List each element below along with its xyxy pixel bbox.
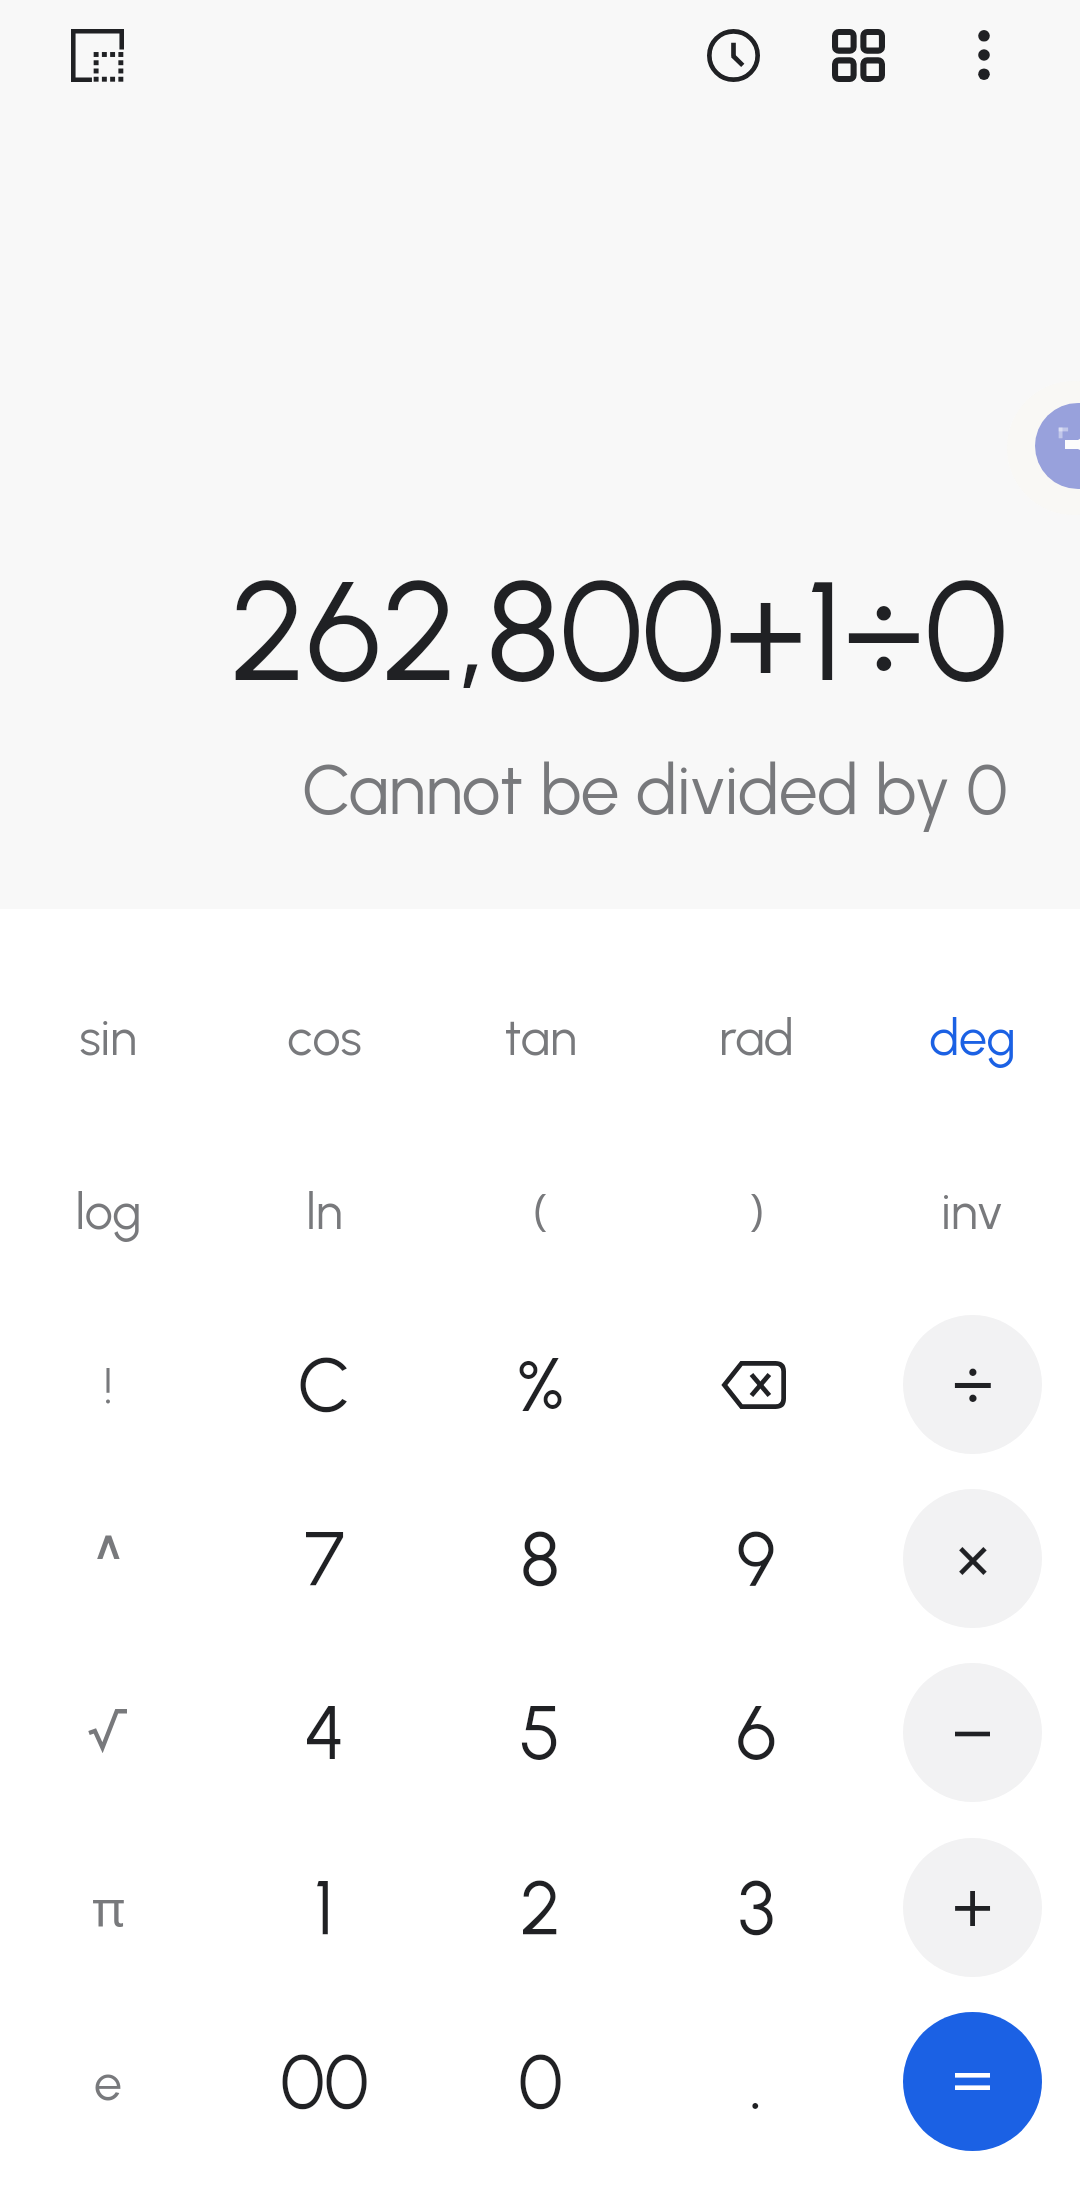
- other: Backspace: [722, 1361, 786, 1409]
- staticText: inv: [941, 1181, 1003, 1241]
- button[interactable]: deg: [864, 949, 1080, 1123]
- staticText: π: [92, 1874, 125, 1942]
- staticText: C: [297, 1340, 351, 1430]
- staticText: !: [104, 1355, 113, 1415]
- button[interactable]: tan: [432, 949, 648, 1123]
- button[interactable]: 9: [648, 1471, 864, 1645]
- button[interactable]: (: [432, 1123, 648, 1297]
- button[interactable]: More options: [923, 0, 1045, 110]
- button[interactable]: Divide: [903, 1315, 1042, 1454]
- button[interactable]: Add: [903, 1838, 1042, 1977]
- staticText: 7: [304, 1514, 345, 1604]
- button[interactable]: .: [648, 1994, 864, 2168]
- button[interactable]: ^: [0, 1471, 216, 1645]
- staticText: (: [532, 1181, 549, 1241]
- staticText: +: [952, 1863, 993, 1947]
- button[interactable]: Multiply: [903, 1489, 1042, 1628]
- staticText: 0: [518, 2037, 563, 2127]
- button[interactable]: 0: [432, 1994, 648, 2168]
- staticText: 9: [736, 1514, 776, 1604]
- staticText: %: [516, 1340, 565, 1430]
- button[interactable]: Square root: [0, 1645, 216, 1819]
- staticText: cos: [287, 1007, 362, 1067]
- button[interactable]: 5: [432, 1645, 648, 1819]
- staticText: ^: [94, 1527, 123, 1613]
- button[interactable]: %: [432, 1297, 648, 1471]
- button[interactable]: Assistant bubble: [1035, 403, 1080, 489]
- button[interactable]: sin: [0, 949, 216, 1123]
- button[interactable]: ): [648, 1123, 864, 1297]
- button[interactable]: 8: [432, 1471, 648, 1645]
- staticText: tan: [504, 1007, 577, 1067]
- button[interactable]: Subtract: [864, 1645, 1080, 1819]
- button[interactable]: Equals: [903, 2012, 1042, 2151]
- button[interactable]: 6: [648, 1645, 864, 1819]
- staticText: Cannot be divided by 0: [302, 748, 1008, 831]
- staticText: 5: [519, 1688, 561, 1778]
- button[interactable]: 3: [648, 1820, 864, 1994]
- button[interactable]: 4: [216, 1645, 432, 1819]
- button[interactable]: Add: [864, 1820, 1080, 1994]
- staticText: ×: [956, 1516, 990, 1599]
- button[interactable]: Apps: [797, 0, 919, 110]
- staticText: 8: [520, 1514, 560, 1604]
- button[interactable]: log: [0, 1123, 216, 1297]
- button[interactable]: inv: [864, 1123, 1080, 1297]
- button[interactable]: rad: [648, 949, 864, 1123]
- staticText: deg: [929, 1007, 1016, 1067]
- staticText: 00: [280, 2037, 369, 2127]
- button[interactable]: ln: [216, 1123, 432, 1297]
- button[interactable]: 00: [216, 1994, 432, 2168]
- staticText: rad: [719, 1007, 794, 1067]
- button[interactable]: Open in floating window: [36, 0, 158, 110]
- button[interactable]: 2: [432, 1820, 648, 1994]
- button[interactable]: C: [216, 1297, 432, 1471]
- staticText: 4: [304, 1688, 345, 1778]
- button[interactable]: 7: [216, 1471, 432, 1645]
- staticText: log: [75, 1181, 142, 1241]
- button[interactable]: cos: [216, 949, 432, 1123]
- staticText: .: [749, 2037, 763, 2127]
- button[interactable]: !: [0, 1297, 216, 1471]
- staticText: 3: [738, 1863, 775, 1953]
- staticText: ln: [306, 1181, 343, 1241]
- staticText: e: [94, 2052, 122, 2112]
- button[interactable]: Subtract: [903, 1663, 1042, 1802]
- button[interactable]: History: [672, 0, 794, 110]
- staticText: 6: [736, 1688, 777, 1778]
- staticText: 262,800+1÷0: [230, 547, 1008, 715]
- button[interactable]: Backspace: [648, 1297, 864, 1471]
- button[interactable]: Equals: [864, 1994, 1080, 2168]
- staticText: 2: [520, 1863, 561, 1953]
- staticText: ): [748, 1181, 765, 1241]
- button[interactable]: Multiply: [864, 1471, 1080, 1645]
- button[interactable]: e: [0, 1994, 216, 2168]
- staticText: ÷: [952, 1339, 994, 1425]
- staticText: sin: [79, 1007, 137, 1067]
- button[interactable]: π: [0, 1820, 216, 1994]
- button[interactable]: Divide: [864, 1297, 1080, 1471]
- staticText: 1: [314, 1863, 334, 1953]
- button[interactable]: 1: [216, 1820, 432, 1994]
